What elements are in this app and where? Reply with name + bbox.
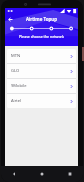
staticText: MTN	[11, 53, 70, 59]
button[interactable]: Airtel	[7, 94, 76, 108]
staticText: Airtime Topup	[26, 16, 57, 22]
button[interactable]: Back	[6, 15, 15, 24]
button[interactable]: Back	[8, 167, 20, 181]
button[interactable]: 9Mobile	[7, 79, 76, 93]
button[interactable]: Recent apps	[64, 167, 76, 181]
staticText: Please choose the network	[5, 34, 78, 39]
button[interactable]: GLO	[7, 64, 76, 78]
staticText: Airtel	[11, 98, 70, 104]
staticText: 9Mobile	[11, 83, 70, 89]
button[interactable]: MTN	[7, 49, 76, 63]
button[interactable]: Home	[36, 167, 48, 181]
staticText: GLO	[11, 68, 70, 74]
